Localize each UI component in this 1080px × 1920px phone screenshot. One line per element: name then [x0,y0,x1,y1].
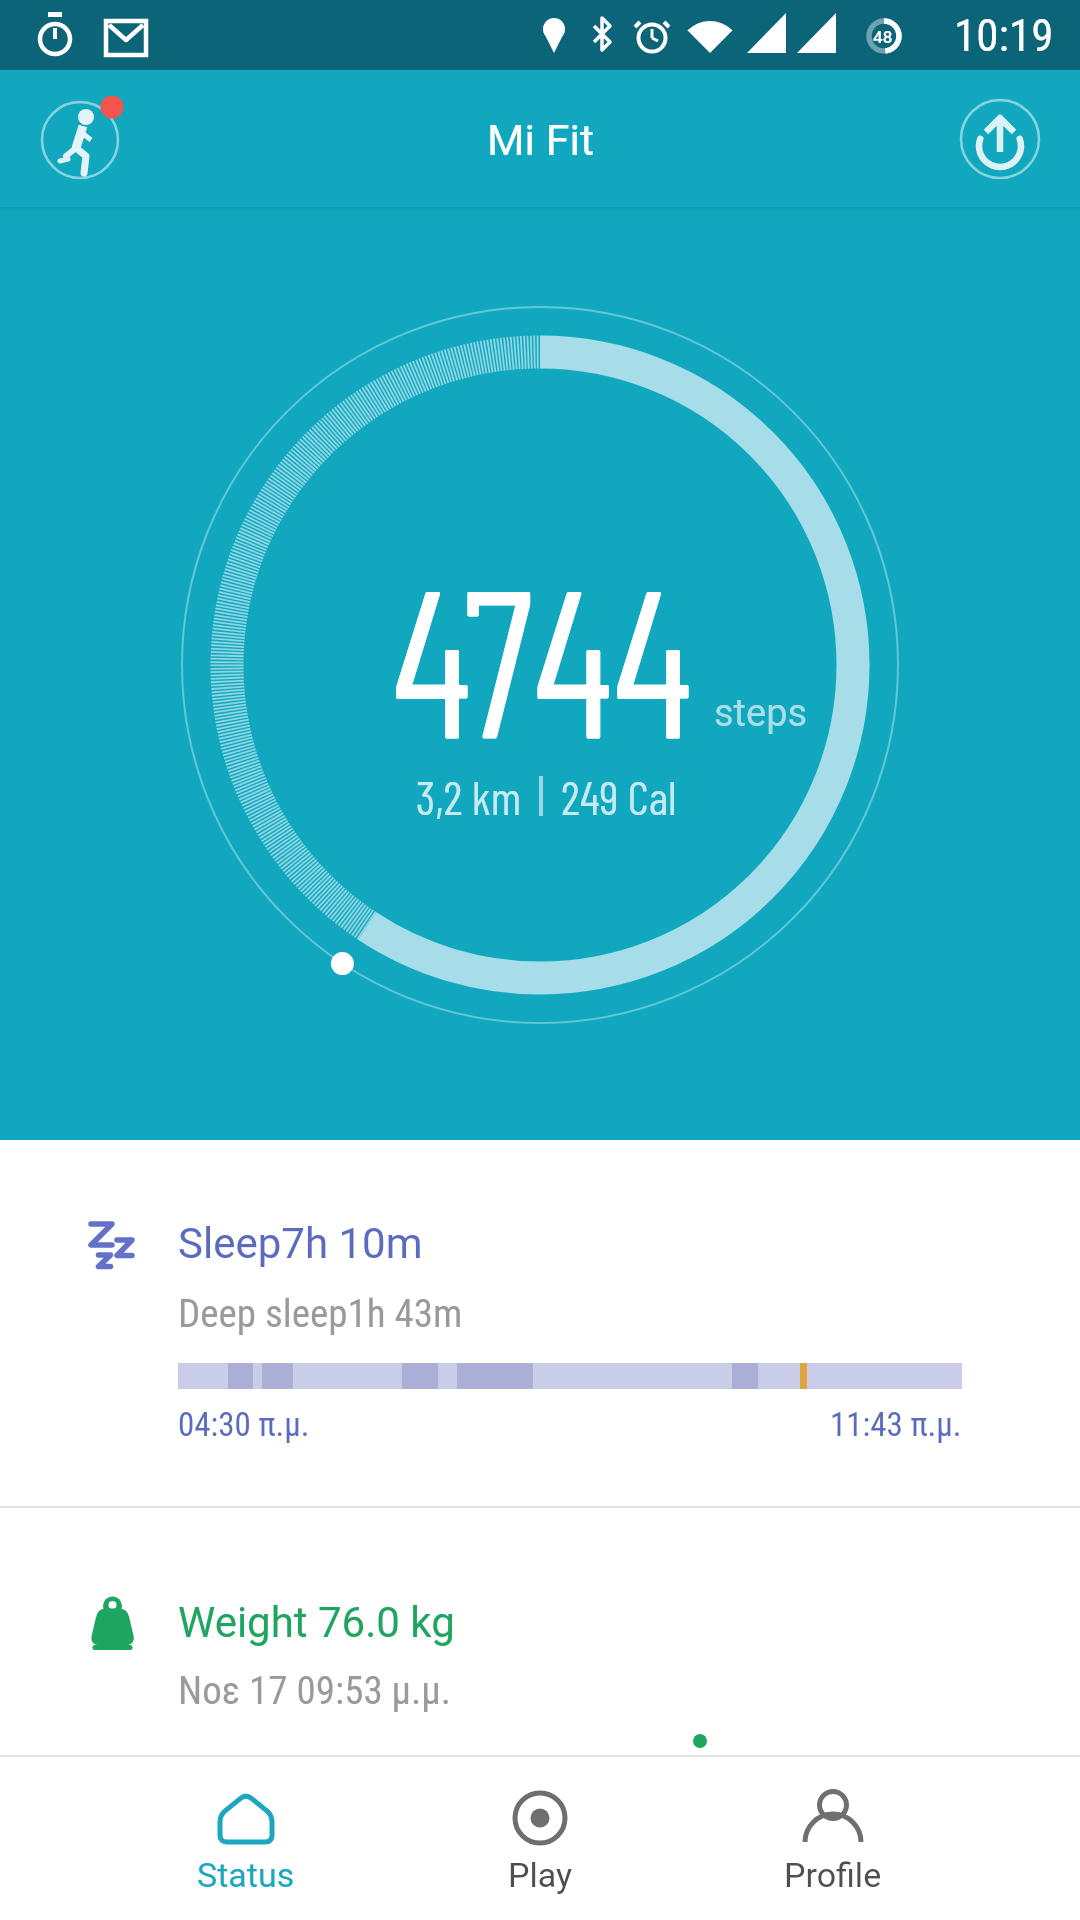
staticText: 4744 [392,529,693,781]
staticText: Play [508,1855,573,1895]
staticText: Νοε 17 09:53 μ.μ. [178,1668,452,1714]
staticText: Profile [784,1855,882,1895]
staticText: 10:19 [954,9,1054,62]
staticText: steps [714,691,808,736]
staticText: Sleep7h 10m [178,1219,423,1268]
staticText: 3,2 km [416,768,522,824]
staticText: Mi Fit [487,115,594,165]
staticText: Status [197,1855,295,1895]
staticText: 04:30 π.μ. [178,1405,310,1444]
staticText: 249 Cal [561,768,677,824]
button[interactable]: Play [440,1757,640,1920]
staticText: Weight 76.0 kg [178,1598,455,1647]
staticText: Deep sleep1h 43m [178,1291,463,1337]
button[interactable]: Sleep7h 10m [0,1140,1080,1508]
button[interactable]: Status [146,1757,346,1920]
button[interactable] [950,89,1050,189]
button[interactable] [30,90,130,190]
button[interactable]: Profile [733,1757,933,1920]
staticText: 11:43 π.μ. [830,1405,962,1444]
button[interactable]: Weight 76.0 kg [0,1508,1080,1757]
staticText: 48 [873,27,893,47]
